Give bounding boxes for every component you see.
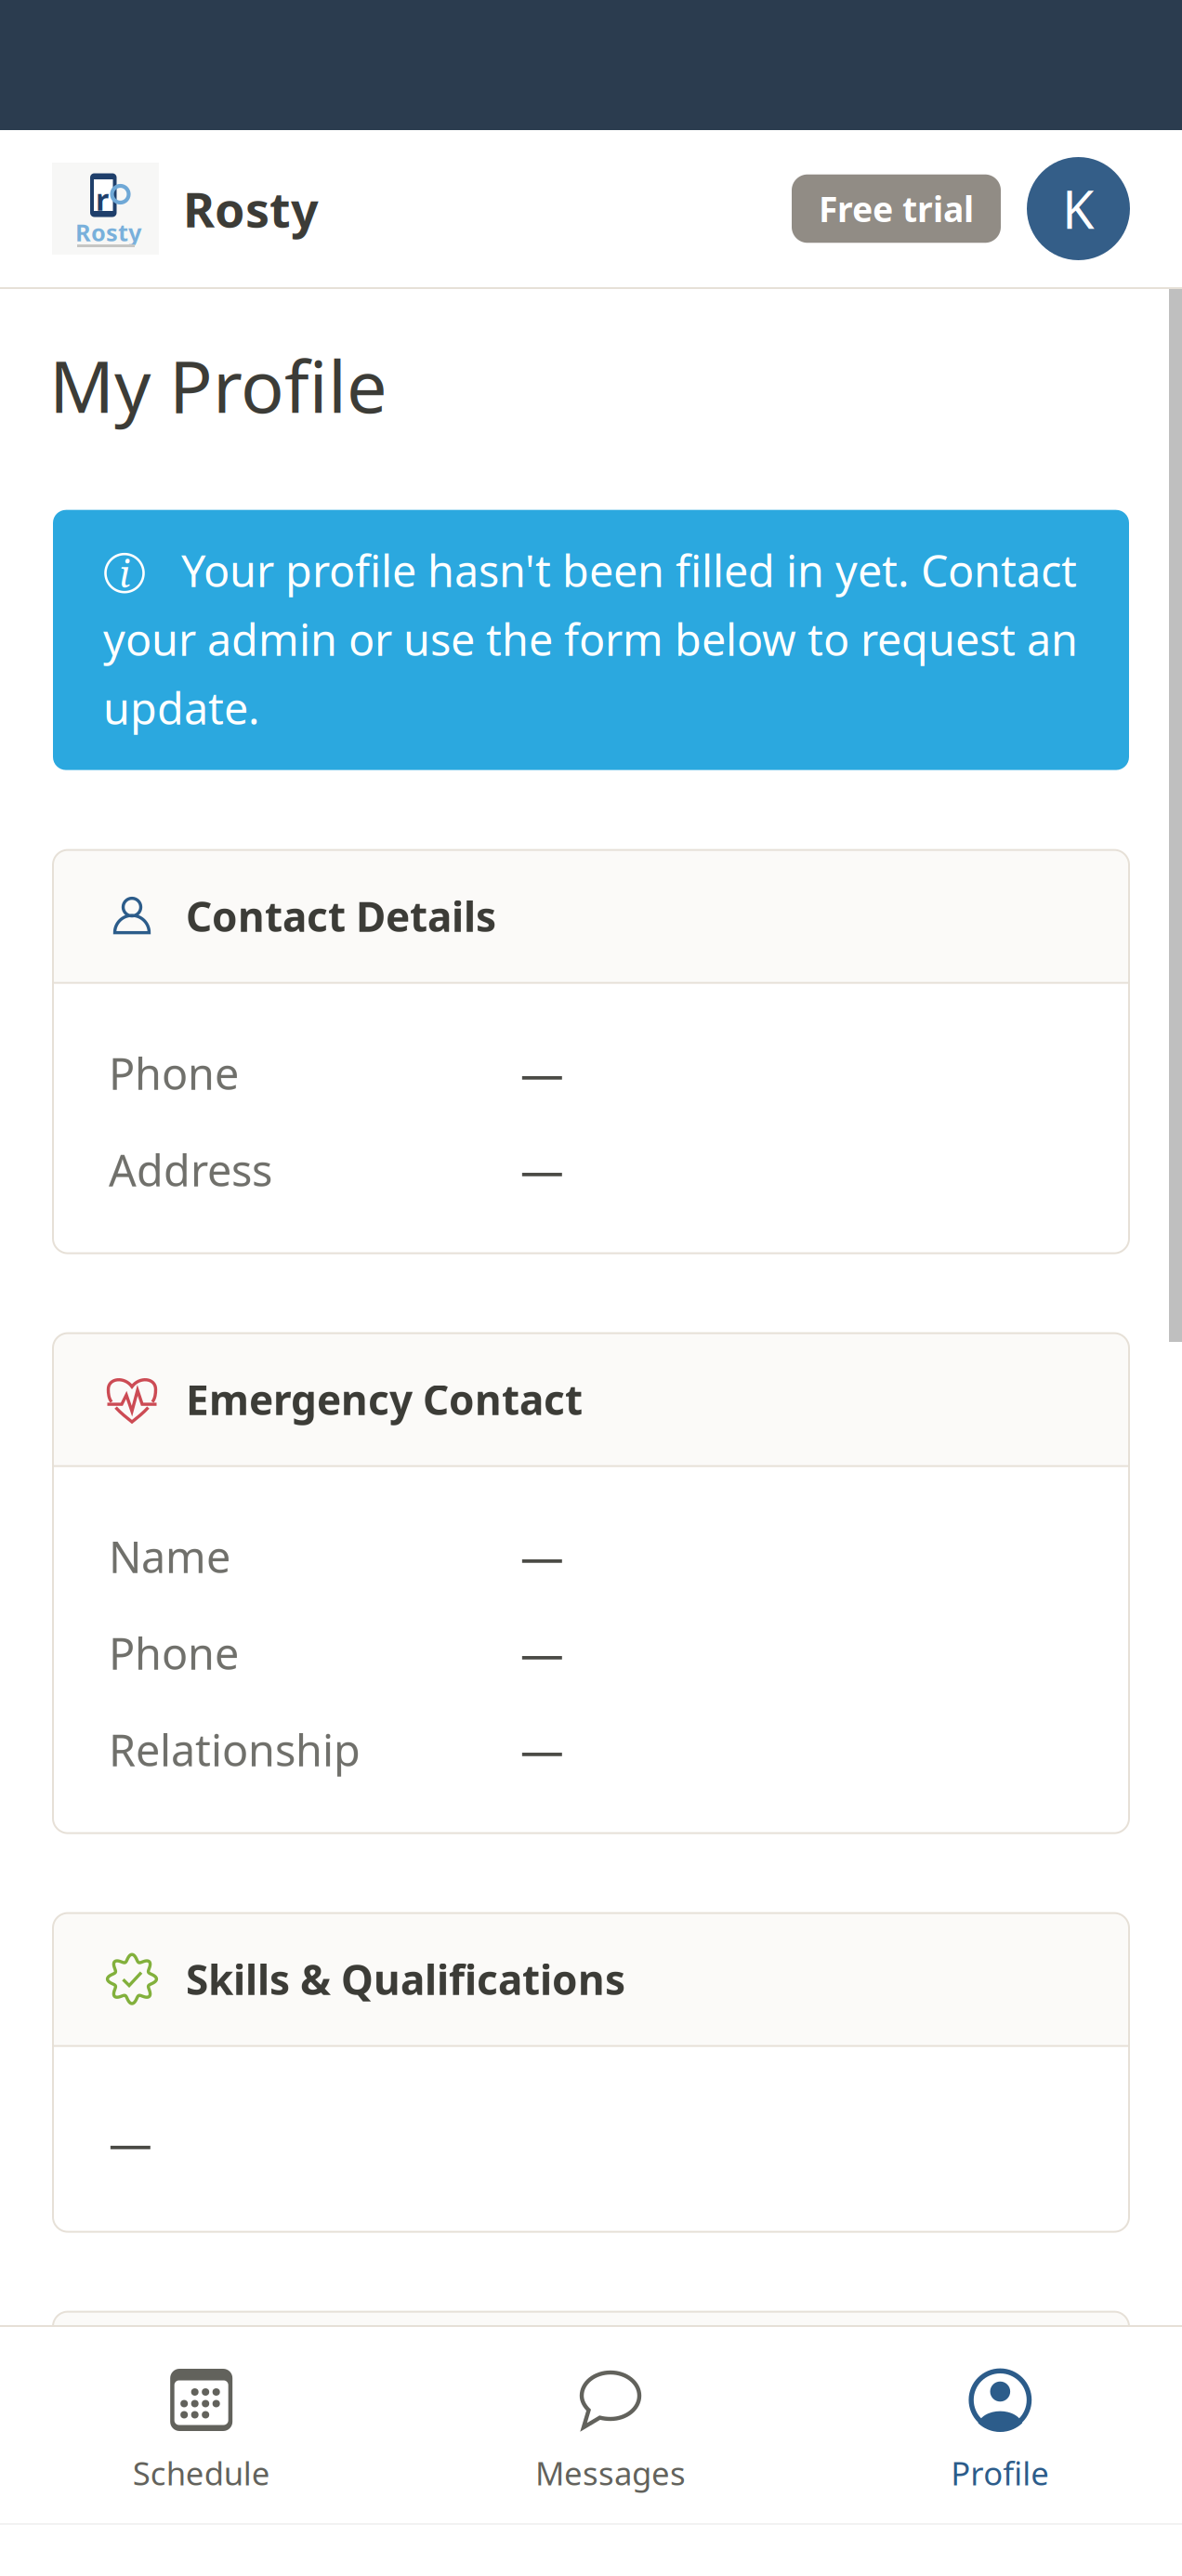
staticText: Phone: [109, 1624, 239, 1682]
staticText: Work Details: [186, 2351, 445, 2405]
staticText: Schedule: [133, 2451, 270, 2494]
staticText: Relationship: [109, 1721, 361, 1778]
staticText: Phone: [109, 1044, 239, 1102]
staticText: Skills & Qualifications: [186, 1952, 625, 2006]
staticText: Profile: [951, 2451, 1049, 2494]
staticText: Rosty: [183, 177, 319, 241]
staticText: i: [119, 548, 130, 598]
staticText: Messages: [535, 2451, 686, 2494]
staticText: Address: [109, 1141, 272, 1198]
staticText: —: [520, 1141, 564, 1198]
button[interactable]: Free trial: [792, 174, 1001, 243]
staticText: Rosty: [75, 217, 141, 248]
staticText: —: [520, 1721, 564, 1778]
button[interactable]: Profile: [951, 2327, 1049, 2523]
staticText: —: [520, 1044, 564, 1102]
staticText: —: [520, 1527, 564, 1585]
button[interactable]: K: [1027, 157, 1130, 260]
button[interactable]: Messages: [535, 2327, 686, 2523]
staticText: My Profile: [49, 337, 387, 433]
staticText: Your profile hasn't been filled in yet. …: [103, 541, 1078, 737]
staticText: K: [1062, 174, 1095, 243]
staticText: Emergency Contact: [186, 1372, 583, 1426]
staticText: Free trial: [819, 186, 974, 232]
staticText: r: [96, 179, 109, 219]
staticText: Contact Details: [186, 889, 496, 943]
button[interactable]: Schedule: [133, 2327, 270, 2523]
staticText: —: [520, 1624, 564, 1682]
staticText: Name: [109, 1527, 230, 1585]
staticText: —: [109, 2114, 152, 2171]
button[interactable]: r: [52, 163, 319, 255]
